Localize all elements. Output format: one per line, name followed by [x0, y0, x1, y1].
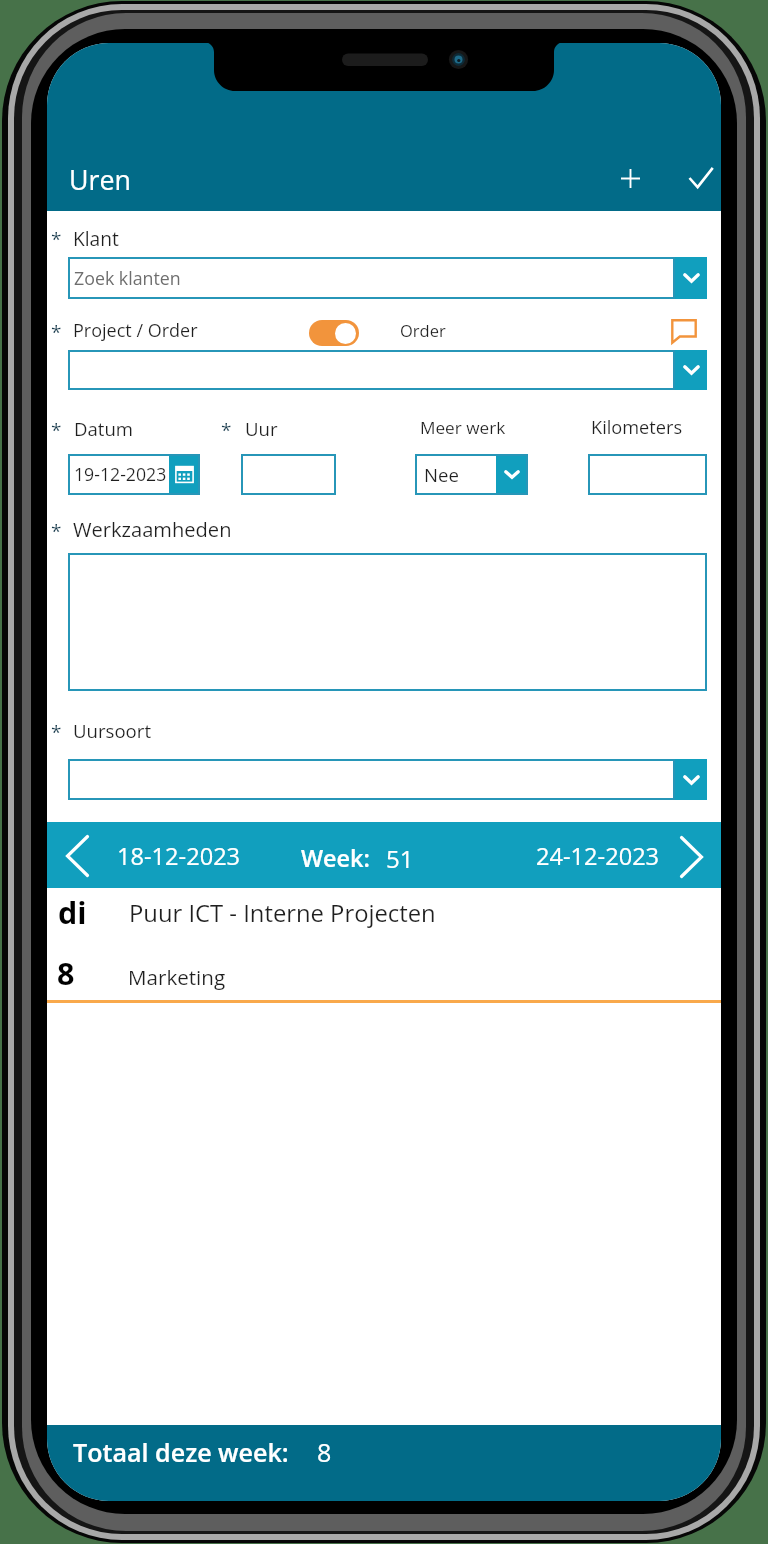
button[interactable]	[241, 454, 336, 495]
staticText: 8	[317, 1435, 332, 1469]
staticText: Order	[400, 319, 446, 341]
staticText: Meer werk	[420, 416, 506, 439]
button[interactable]: Projectenlijst openen	[675, 350, 707, 390]
staticText: Werkzaamheden	[73, 516, 232, 543]
button[interactable]	[47, 944, 721, 1000]
button[interactable]	[588, 454, 707, 495]
staticText: *	[51, 719, 62, 745]
staticText: Totaal deze week:	[73, 1435, 289, 1469]
button[interactable]: Datum kiezen	[169, 454, 200, 495]
staticText: 24-12-2023	[536, 840, 660, 872]
button[interactable]: Meer werk kiezen	[496, 454, 528, 495]
button[interactable]: Uursoort lijst openen	[675, 759, 707, 800]
staticText: Nee	[424, 462, 459, 487]
staticText: Klant	[73, 225, 119, 251]
button[interactable]: Volgende week	[668, 824, 714, 890]
staticText: 8	[57, 952, 75, 994]
staticText: Datum	[74, 416, 134, 441]
button[interactable]: Klantenlijst openen	[675, 257, 707, 299]
button[interactable]	[47, 888, 721, 944]
button	[47, 43, 721, 211]
staticText: Uur	[245, 416, 278, 441]
button[interactable]: Nee	[415, 454, 496, 495]
button[interactable]: Zoek klanten	[68, 257, 675, 299]
staticText: *	[51, 518, 62, 544]
staticText: 18-12-2023	[117, 840, 241, 872]
staticText: 19-12-2023	[74, 462, 167, 486]
staticText: Week:	[301, 842, 370, 874]
staticText: *	[51, 319, 62, 345]
button[interactable]	[68, 759, 675, 800]
staticText: 51	[386, 842, 414, 875]
staticText: *	[51, 226, 62, 252]
button[interactable]	[68, 350, 675, 390]
button[interactable]: Vorige week	[54, 823, 100, 889]
button[interactable]	[68, 553, 707, 691]
staticText: di	[58, 891, 87, 933]
button[interactable]: Opmerking	[668, 316, 700, 348]
button[interactable]: Opslaan	[675, 152, 721, 204]
staticText: *	[221, 417, 232, 443]
button[interactable]: 19-12-2023	[68, 454, 168, 495]
staticText: *	[51, 417, 62, 443]
staticText: Zoek klanten	[74, 266, 181, 290]
staticText: Puur ICT - Interne Projecten	[129, 897, 436, 929]
staticText: Kilometers	[591, 415, 683, 440]
staticText: Uursoort	[73, 718, 152, 743]
staticText: Uren	[69, 161, 131, 197]
button[interactable]: Nieuw uur toevoegen	[604, 152, 656, 204]
staticText: Marketing	[128, 963, 226, 991]
button[interactable]: Project of order keuze	[309, 320, 359, 346]
staticText: Project / Order	[73, 318, 198, 343]
